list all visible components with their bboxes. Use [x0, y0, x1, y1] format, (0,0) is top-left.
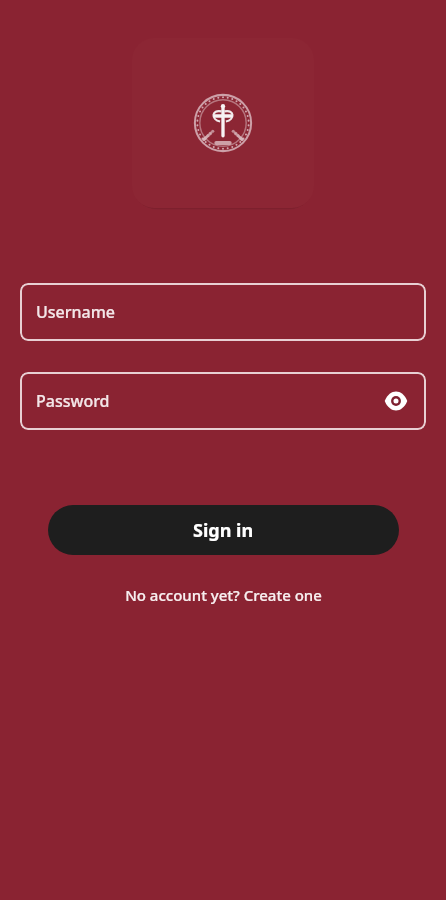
staticText: Username — [36, 301, 116, 323]
staticText: No account yet? Create one — [125, 585, 322, 605]
staticText: Sign in — [193, 518, 254, 543]
button[interactable]: Sign in — [48, 505, 399, 555]
button[interactable]: Show password — [376, 381, 416, 421]
button[interactable]: Username — [20, 283, 426, 341]
button[interactable]: No account yet? Create one — [115, 581, 332, 609]
button[interactable]: Password — [20, 372, 426, 430]
staticText: Password — [36, 390, 110, 412]
